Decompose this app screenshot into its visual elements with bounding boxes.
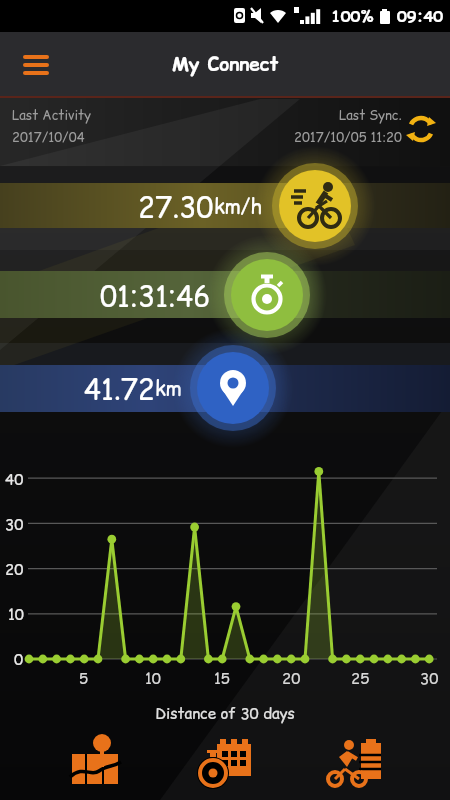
button[interactable] — [405, 113, 437, 145]
button[interactable] — [224, 252, 310, 338]
staticText: My Connect — [172, 51, 279, 78]
button[interactable] — [14, 45, 58, 85]
staticText: Distance of 30 days — [0, 703, 450, 724]
staticText: 30 — [420, 668, 439, 688]
staticText: 0 — [14, 649, 24, 669]
staticText: 20 — [282, 668, 301, 688]
staticText: 5 — [79, 668, 89, 688]
button[interactable] — [55, 728, 135, 794]
staticText: Last Activity — [12, 106, 91, 124]
staticText: 2017/10/05 11:20 — [294, 128, 402, 146]
button[interactable] — [315, 728, 395, 794]
staticText: 09:40 — [397, 5, 443, 27]
staticText: 40 — [5, 469, 24, 489]
staticText: 30 — [5, 514, 24, 534]
staticText: 25 — [351, 668, 370, 688]
staticText: Last Sync. — [339, 106, 402, 124]
staticText: 41.72 — [84, 369, 155, 408]
staticText: 20 — [5, 559, 24, 579]
staticText: 01:31:46 — [100, 276, 211, 315]
staticText: km/h — [214, 193, 263, 221]
staticText: 15 — [214, 668, 230, 688]
staticText: 10 — [8, 604, 24, 624]
staticText: km — [155, 375, 182, 403]
staticText: 27.30 — [138, 187, 214, 226]
button[interactable] — [185, 728, 265, 794]
staticText: 10 — [145, 668, 161, 688]
staticText: 2017/10/04 — [12, 128, 85, 146]
button[interactable] — [190, 345, 276, 431]
button[interactable] — [272, 163, 358, 249]
staticText: 100% — [331, 5, 374, 27]
